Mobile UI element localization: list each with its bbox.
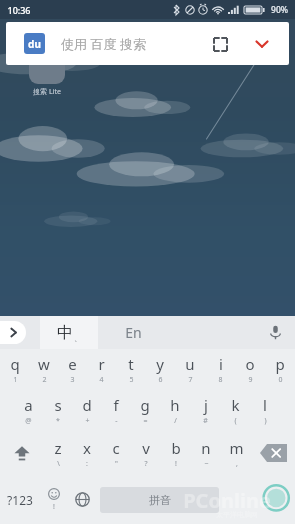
staticText: =: [143, 416, 148, 426]
staticText: \: [57, 459, 60, 469]
staticText: +: [85, 416, 90, 426]
staticText: h: [170, 395, 180, 415]
button[interactable]: Voice input: [255, 316, 295, 349]
staticText: ?123: [7, 492, 33, 508]
staticText: 5: [129, 375, 134, 385]
button[interactable]: x: [72, 431, 101, 475]
staticText: 3: [70, 375, 75, 385]
button[interactable]: 中: [40, 316, 98, 349]
staticText: En: [125, 323, 142, 342]
staticText: 4: [99, 375, 104, 385]
staticText: x: [83, 438, 91, 458]
staticText: 使用 百度 搜索: [61, 35, 146, 53]
staticText: g: [140, 395, 150, 415]
button[interactable]: z: [43, 431, 72, 475]
staticText: t: [128, 354, 134, 374]
staticText: n: [201, 438, 211, 458]
button[interactable]: ?123: [0, 475, 40, 524]
button[interactable]: b: [161, 431, 191, 475]
button[interactable]: g: [130, 390, 160, 431]
button[interactable]: Collapse: [245, 27, 279, 61]
button[interactable]: 拼音: [100, 487, 219, 513]
button[interactable]: n: [191, 431, 221, 475]
button[interactable]: h: [160, 390, 190, 431]
staticText: e: [68, 354, 77, 374]
button[interactable]: w: [29, 349, 58, 390]
staticText: 拼音: [149, 493, 171, 507]
staticText: ,: [236, 459, 238, 469]
staticText: #: [203, 416, 208, 426]
button[interactable]: j: [190, 390, 220, 431]
button[interactable]: a: [14, 390, 43, 431]
staticText: q: [10, 354, 20, 374]
staticText: 90%: [271, 4, 288, 16]
staticText: 中: [57, 323, 73, 343]
staticText: :: [86, 459, 88, 469]
button[interactable]: Expand: [0, 321, 26, 344]
staticText: PConline: [183, 487, 271, 514]
button[interactable]: p: [265, 349, 295, 390]
staticText: y: [156, 354, 164, 374]
button[interactable]: c: [101, 431, 131, 475]
button[interactable]: d: [72, 390, 101, 431]
staticText: -: [115, 416, 118, 426]
staticText: 0: [278, 375, 283, 385]
staticText: ": [115, 459, 118, 469]
staticText: 1: [13, 375, 18, 385]
staticText: u: [185, 354, 195, 374]
staticText: 7: [188, 375, 193, 385]
staticText: m: [229, 438, 244, 458]
staticText: du: [28, 37, 41, 51]
button[interactable]: t: [116, 349, 145, 390]
button[interactable]: k: [220, 390, 250, 431]
staticText: 太平洋电脑网: [216, 510, 258, 519]
button[interactable]: Change language: [68, 475, 96, 524]
staticText: b: [171, 438, 181, 458]
staticText: a: [24, 395, 33, 415]
staticText: v: [142, 438, 150, 458]
staticText: ?: [144, 459, 148, 469]
staticText: z: [54, 438, 62, 458]
button[interactable]: i: [205, 349, 235, 390]
staticText: w: [38, 354, 50, 374]
staticText: 10:36: [7, 4, 31, 16]
button[interactable]: e: [58, 349, 87, 390]
staticText: 2: [42, 375, 47, 385]
button[interactable]: Emoji: [40, 475, 68, 524]
staticText: i: [219, 354, 223, 374]
staticText: *: [56, 416, 60, 426]
button[interactable]: du: [6, 22, 289, 65]
button[interactable]: En: [98, 316, 168, 349]
staticText: d: [82, 395, 92, 415]
button[interactable]: f: [101, 390, 130, 431]
staticText: 、: [74, 333, 82, 343]
staticText: s: [54, 395, 62, 415]
button[interactable]: l: [250, 390, 280, 431]
staticText: 6: [158, 375, 163, 385]
staticText: 8: [218, 375, 223, 385]
button[interactable]: Backspace: [251, 431, 295, 475]
button[interactable]: Scan: [203, 27, 237, 61]
staticText: l: [263, 395, 267, 415]
button[interactable]: v: [131, 431, 161, 475]
staticText: ): [264, 416, 267, 426]
staticText: f: [113, 395, 119, 415]
staticText: ~: [204, 459, 209, 469]
button[interactable]: 搜索 Lite: [24, 48, 70, 97]
button[interactable]: s: [43, 390, 72, 431]
button[interactable]: y: [145, 349, 175, 390]
staticText: k: [231, 395, 240, 415]
staticText: /: [174, 416, 177, 426]
button[interactable]: Shift: [0, 431, 43, 475]
staticText: c: [112, 438, 120, 458]
staticText: p: [275, 354, 285, 374]
button[interactable]: o: [235, 349, 265, 390]
staticText: j: [204, 395, 208, 415]
button[interactable]: q: [0, 349, 29, 390]
button[interactable]: r: [87, 349, 116, 390]
button[interactable]: u: [175, 349, 205, 390]
staticText: 搜索 Lite: [33, 87, 61, 97]
button[interactable]: m: [221, 431, 251, 475]
staticText: 9: [248, 375, 253, 385]
staticText: @: [25, 416, 32, 426]
